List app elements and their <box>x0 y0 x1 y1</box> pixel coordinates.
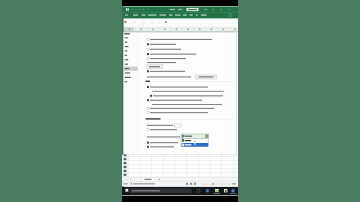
button[interactable]: Play video <box>122 0 238 202</box>
